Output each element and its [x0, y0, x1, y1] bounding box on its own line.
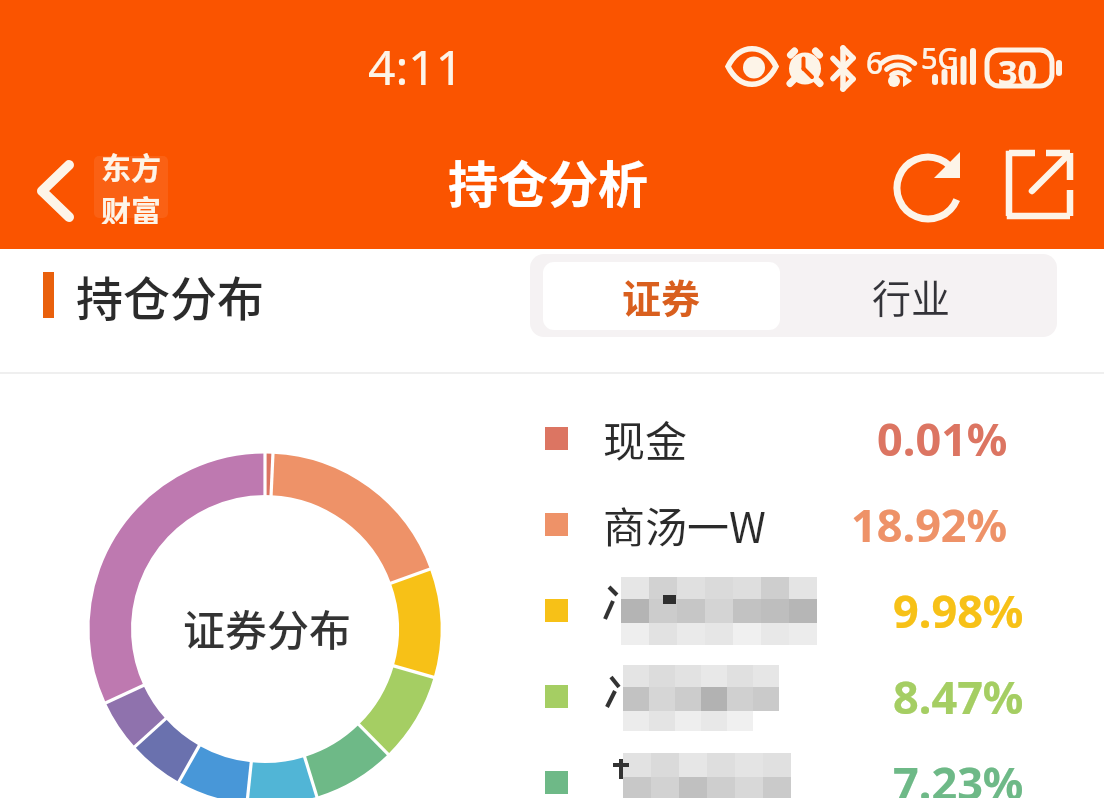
button[interactable]: 行业: [793, 262, 1030, 330]
button[interactable]: 证券: [543, 262, 780, 330]
button[interactable]: 现金: [0, 395, 1104, 481]
staticText: 持仓分析: [448, 145, 648, 217]
staticText: 5G: [921, 38, 959, 77]
staticText: 证券: [622, 268, 701, 324]
button[interactable]: 8.47%: [0, 653, 1104, 739]
button[interactable]: Refresh: [880, 140, 976, 236]
button[interactable]: 东方财富: [92, 144, 170, 224]
staticText: 4:11: [368, 34, 464, 99]
staticText: 行业: [872, 268, 951, 324]
staticText: 持仓分布: [76, 261, 264, 329]
staticText: 7.23%: [893, 752, 1024, 798]
button[interactable]: Share: [1004, 148, 1076, 220]
button[interactable]: 7.23%: [0, 739, 1104, 798]
staticText: 东方: [101, 144, 161, 187]
staticText: 6: [866, 42, 884, 83]
staticText: 商汤一W: [603, 494, 766, 555]
staticText: 18.92%: [851, 494, 1008, 555]
staticText: 证券分布: [183, 597, 352, 658]
staticText: 9.98%: [893, 580, 1024, 641]
staticText: 8.47%: [893, 666, 1024, 727]
button[interactable]: 商汤一W: [0, 481, 1104, 567]
staticText: 财富: [101, 187, 161, 224]
staticText: 0.01%: [877, 408, 1008, 469]
staticText: 现金: [603, 408, 688, 469]
button[interactable]: Back: [16, 140, 94, 218]
button[interactable]: 9.98%: [0, 567, 1104, 653]
staticText: 30: [998, 49, 1037, 95]
